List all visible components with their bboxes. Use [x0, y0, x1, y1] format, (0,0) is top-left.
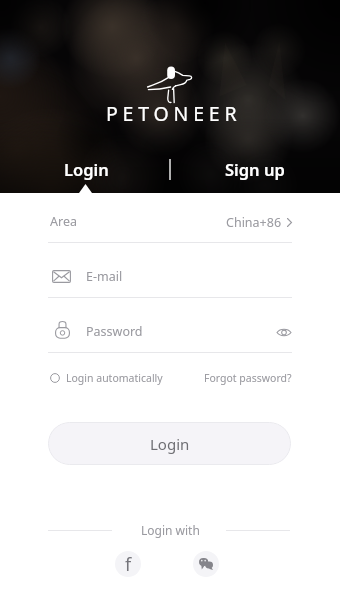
- button[interactable]: Login automatically: [50, 369, 163, 387]
- button[interactable]: Log in with Facebook: [115, 551, 141, 577]
- button[interactable]: Show password: [272, 320, 296, 344]
- button[interactable]: Sign up: [215, 155, 295, 183]
- button[interactable]: Login: [48, 422, 291, 465]
- button[interactable]: Password: [48, 310, 260, 352]
- staticText: E-mail: [86, 268, 123, 285]
- staticText: Sign up: [225, 158, 285, 180]
- staticText: Login: [150, 434, 190, 454]
- staticText: f: [125, 552, 132, 577]
- button[interactable]: Login: [46, 155, 126, 183]
- staticText: China+86: [226, 214, 282, 231]
- button[interactable]: E-mail: [48, 255, 292, 297]
- staticText: Area: [50, 213, 77, 230]
- staticText: Login: [64, 158, 109, 180]
- staticText: Password: [86, 323, 143, 340]
- staticText: Login with: [141, 522, 200, 538]
- staticText: Forgot password?: [204, 371, 292, 385]
- staticText: Login automatically: [66, 371, 163, 385]
- button[interactable]: Log in with WeChat: [193, 551, 219, 577]
- staticText: PETONEER: [106, 100, 242, 127]
- button[interactable]: Area: [48, 200, 292, 242]
- button[interactable]: Forgot password?: [192, 369, 292, 387]
